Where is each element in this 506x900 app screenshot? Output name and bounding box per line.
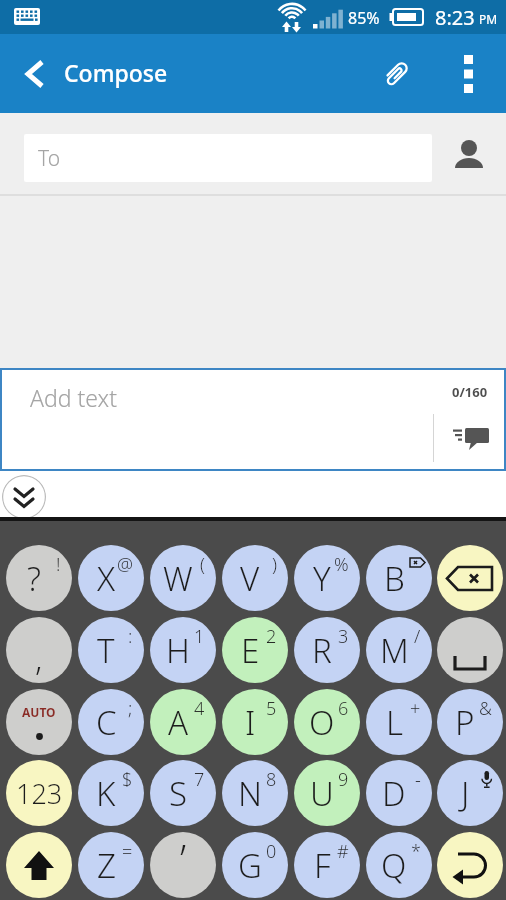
staticText: T [97,628,115,673]
button[interactable]: E [222,617,288,683]
staticText: E [241,628,260,673]
staticText: I [245,700,256,745]
button[interactable] [432,113,506,196]
staticText: 5 [266,696,277,721]
button[interactable] [2,475,46,519]
button[interactable] [437,617,503,683]
staticText: 85% [348,7,380,29]
staticText: 2 [266,624,277,649]
staticText: & [479,696,492,721]
staticText: + [410,696,421,721]
button[interactable]: S [150,760,216,826]
staticText: S [169,771,188,816]
staticText: Z [97,843,116,888]
staticText: A [168,700,189,745]
button[interactable]: W [150,545,216,611]
button[interactable]: P [437,689,503,755]
staticText: 0 [266,839,277,864]
staticText: V [240,556,260,601]
staticText: 1 [194,624,205,649]
staticText: / [414,624,421,649]
staticText: K [96,771,116,816]
staticText: Q [381,843,407,888]
staticText: O [309,700,335,745]
button[interactable]: , [6,617,72,683]
button[interactable] [372,50,420,98]
staticText: PM [479,11,498,27]
staticText: R [312,628,332,673]
button[interactable] [437,832,503,898]
staticText: # [337,839,349,864]
button[interactable]: C [78,689,144,755]
staticText: U [310,771,334,816]
staticText: 123 [16,775,63,812]
staticText: ’ [180,832,187,885]
button[interactable]: U [294,760,360,826]
button[interactable]: L [366,689,432,755]
button[interactable]: J [437,760,503,826]
button[interactable]: X [78,545,144,611]
staticText: P [455,700,475,745]
button[interactable]: Y [294,545,360,611]
button[interactable]: Add text [0,368,506,471]
staticText: 7 [194,767,205,792]
button[interactable]: ’ [150,832,216,898]
button[interactable]: V [222,545,288,611]
button[interactable]: AUTO [6,689,72,755]
staticText: 0/160 [452,383,488,401]
button[interactable]: H [150,617,216,683]
staticText: Compose [64,57,168,88]
button[interactable]: T [78,617,144,683]
staticText: 8 [266,767,277,792]
staticText: @ [117,552,133,577]
staticText: ? [27,556,41,601]
button[interactable]: B [366,545,432,611]
button[interactable]: R [294,617,360,683]
staticText: Add text [30,382,117,413]
staticText: * [411,839,421,864]
staticText: - [415,767,421,792]
button[interactable]: D [366,760,432,826]
button[interactable]: K [78,760,144,826]
staticText: D [382,771,406,816]
staticText: ) [272,552,277,577]
button[interactable]: 123 [6,760,72,826]
button[interactable]: F [294,832,360,898]
staticText: G [238,843,262,888]
button[interactable] [6,832,72,898]
staticText: 9 [338,767,349,792]
button[interactable]: M [366,617,432,683]
button[interactable] [0,34,60,113]
staticText: 8:23 [435,4,475,31]
staticText: W [163,556,193,601]
button[interactable]: To [24,134,432,182]
button[interactable]: Z [78,832,144,898]
button[interactable]: N [222,760,288,826]
button[interactable]: I [222,689,288,755]
staticText: Y [313,556,331,601]
button[interactable]: ? [6,545,72,611]
button[interactable] [446,34,490,113]
staticText: % [334,552,349,577]
staticText: AUTO [22,704,56,720]
button[interactable]: O [294,689,360,755]
staticText: J [461,771,470,816]
button[interactable]: A [150,689,216,755]
staticText: : [128,624,133,649]
button[interactable] [437,545,503,611]
staticText: 3 [338,624,349,649]
button[interactable]: G [222,832,288,898]
staticText: 4 [194,696,205,721]
staticText: F [314,843,331,888]
staticText: H [166,628,190,673]
staticText: $ [122,767,133,792]
button[interactable]: Q [366,832,432,898]
staticText: , [35,636,43,681]
staticText: ; [128,696,133,721]
staticText: L [386,700,403,745]
staticText: X [97,556,116,601]
staticText: To [38,144,61,173]
staticText: N [238,771,263,816]
staticText: B [384,556,405,601]
staticText: = [122,839,133,864]
